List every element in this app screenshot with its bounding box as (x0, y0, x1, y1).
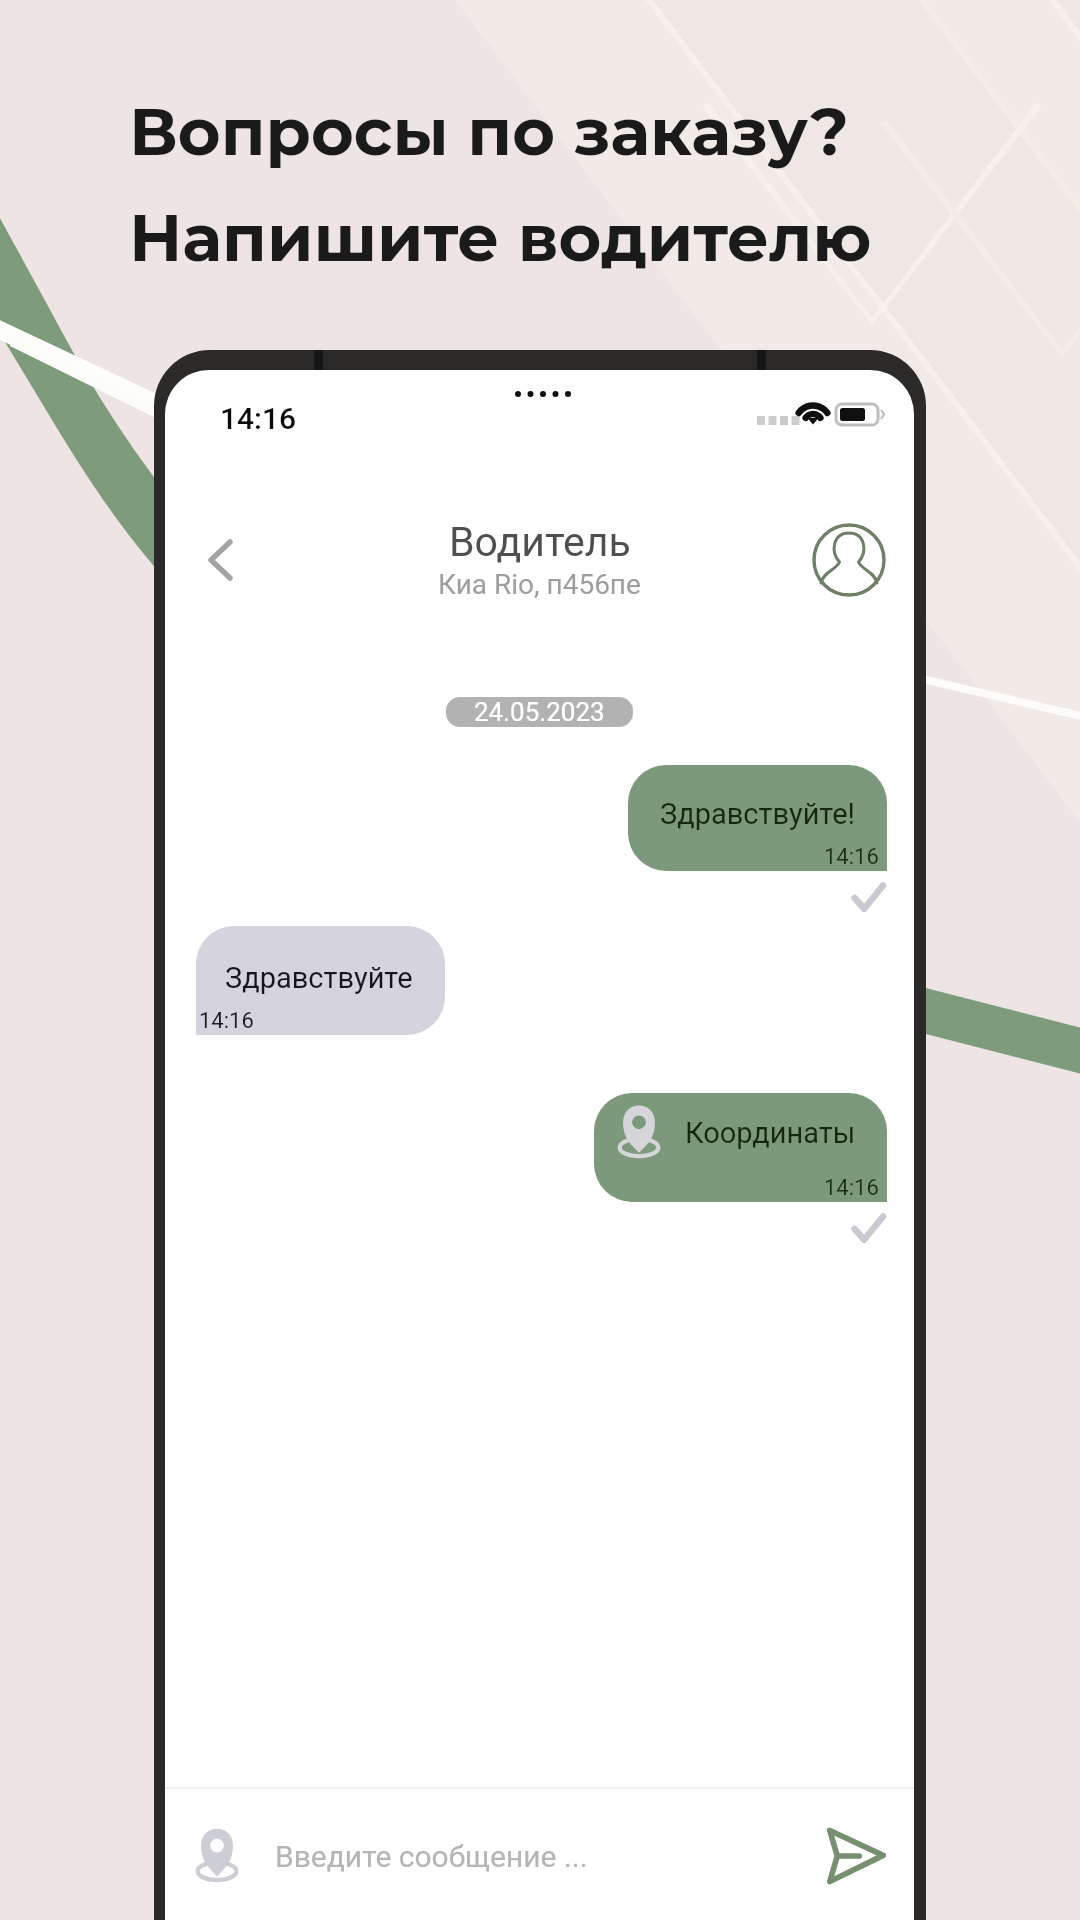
button[interactable]: Координаты (594, 1093, 887, 1202)
staticText: Здравствуйте (225, 961, 413, 995)
staticText: Напишите водителю (129, 198, 872, 278)
button[interactable]: Back (184, 526, 252, 594)
button[interactable]: Введите сообщение ... (275, 1839, 825, 1874)
button[interactable]: Profile (812, 523, 886, 597)
staticText: Киа Rio, п456пе (438, 568, 641, 601)
staticText: Здравствуйте! (660, 797, 856, 831)
staticText: 14:16 (199, 1008, 254, 1034)
staticText: 24.05.2023 (474, 697, 605, 727)
staticText: 14:16 (824, 1175, 879, 1201)
button[interactable]: Здравствуйте (196, 926, 445, 1035)
button[interactable]: Здравствуйте! (628, 765, 887, 871)
button[interactable]: Send (825, 1827, 885, 1885)
button[interactable]: Send location (196, 1827, 238, 1886)
staticText: 14:16 (824, 844, 879, 870)
staticText: Вопросы по заказу? (129, 92, 849, 172)
staticText: Координаты (685, 1116, 856, 1150)
staticText: 14:16 (220, 401, 297, 436)
staticText: Введите сообщение ... (275, 1839, 588, 1874)
staticText: Водитель (449, 518, 631, 566)
